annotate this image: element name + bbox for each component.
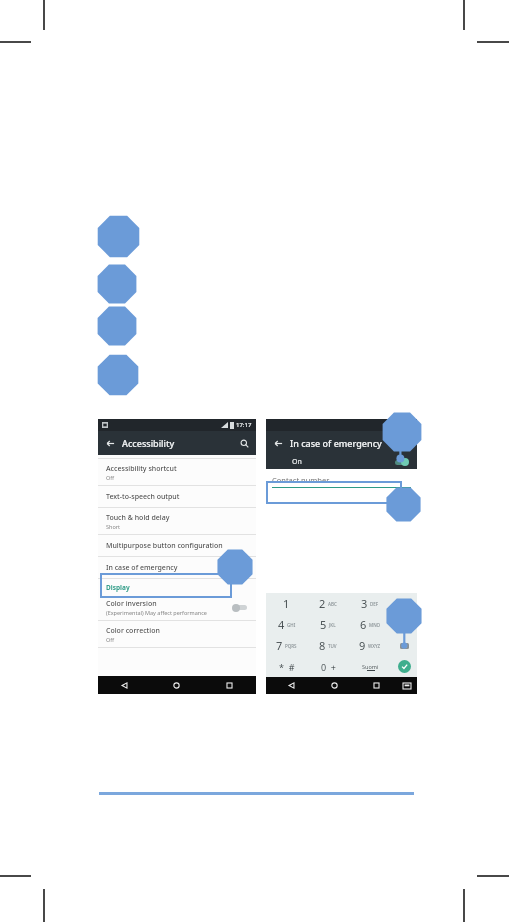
staticText: On <box>292 457 302 467</box>
staticText: (Experimental) May affect performance <box>106 609 207 616</box>
button[interactable]: In case of emergency <box>98 557 256 579</box>
staticText: 8 <box>319 638 326 653</box>
button[interactable]: * # <box>266 656 307 677</box>
button[interactable]: Keyboard <box>397 677 417 694</box>
button[interactable]: 7 <box>266 635 307 656</box>
button[interactable] <box>232 603 248 612</box>
button[interactable]: 4 <box>266 614 307 635</box>
button[interactable]: Text-to-speech output <box>98 486 256 508</box>
button[interactable]: Step callout <box>385 597 423 635</box>
staticText: Display <box>106 583 130 592</box>
staticText: 4 <box>278 617 285 632</box>
button[interactable]: Recents <box>203 676 256 694</box>
button[interactable]: Back <box>266 431 290 455</box>
button[interactable]: Step callout <box>385 486 422 523</box>
button[interactable]: 0 + <box>307 656 349 677</box>
staticText: 9 <box>359 638 366 653</box>
button[interactable]: 6 <box>349 614 391 635</box>
staticText: TUV <box>328 643 337 649</box>
staticText: Color correction <box>106 626 160 636</box>
button[interactable]: Confirm <box>398 660 411 673</box>
staticText: Off <box>106 474 115 481</box>
staticText: * # <box>279 661 295 673</box>
button[interactable]: Suomi <box>349 656 391 677</box>
button[interactable]: Step callout <box>381 411 423 453</box>
button[interactable]: Multipurpose button configuration <box>98 535 256 557</box>
staticText: 0 + <box>321 661 336 673</box>
staticText: In case of emergency <box>290 437 382 449</box>
button[interactable]: Back <box>270 677 313 694</box>
staticText: MNO <box>369 622 381 628</box>
button[interactable]: 8 <box>307 635 349 656</box>
button[interactable]: Recents <box>355 677 397 694</box>
button[interactable]: Search <box>232 431 256 455</box>
button[interactable]: Step callout <box>96 305 138 347</box>
staticText: ABC <box>328 601 337 607</box>
button[interactable]: On <box>266 455 417 469</box>
button[interactable]: Back <box>98 676 150 694</box>
button[interactable]: Accessibility shortcut <box>98 459 256 486</box>
staticText: 1 <box>283 596 290 611</box>
button[interactable]: Step callout <box>216 548 254 586</box>
staticText: Short <box>106 523 121 530</box>
staticText: Color inversion <box>106 599 157 609</box>
staticText: Contact number <box>272 475 330 485</box>
staticText: In case of emergency <box>106 563 178 573</box>
button[interactable]: Back <box>98 431 122 455</box>
button[interactable]: Home <box>150 676 203 694</box>
button[interactable]: Step callout <box>96 263 138 305</box>
staticText: GHI <box>287 622 296 628</box>
button[interactable]: 2 <box>307 593 349 614</box>
staticText: Off <box>106 636 115 643</box>
staticText: PQRS <box>285 643 297 649</box>
staticText: Accessibility shortcut <box>106 464 177 474</box>
button[interactable]: Touch & hold delay <box>98 508 256 535</box>
staticText: Multipurpose button configuration <box>106 541 223 551</box>
button[interactable]: Step callout <box>96 214 141 259</box>
button[interactable]: 1 <box>266 593 307 614</box>
staticText: DEF <box>370 601 379 607</box>
button[interactable]: Color correction <box>98 621 256 648</box>
staticText: JKL <box>329 622 336 628</box>
button[interactable]: 3 <box>349 593 391 614</box>
staticText: WXYZ <box>368 643 381 649</box>
staticText: Text-to-speech output <box>106 492 180 502</box>
button[interactable]: Color inversion <box>98 594 256 620</box>
staticText: 6 <box>360 617 367 632</box>
staticText: 5 <box>320 617 327 632</box>
button[interactable]: 5 <box>307 614 349 635</box>
staticText: Suomi <box>362 663 379 670</box>
staticText: 2 <box>319 596 326 611</box>
button[interactable]: Delete <box>400 643 409 649</box>
staticText: 3 <box>361 596 368 611</box>
staticText: 17:17 <box>236 421 252 429</box>
button[interactable]: Contact number <box>272 475 411 488</box>
button[interactable]: Step callout <box>96 353 140 397</box>
staticText: Accessibility <box>122 437 175 449</box>
staticText: 7 <box>276 638 283 653</box>
staticText: Touch & hold delay <box>106 513 170 523</box>
button[interactable]: Home <box>313 677 355 694</box>
button[interactable]: 9 <box>349 635 391 656</box>
